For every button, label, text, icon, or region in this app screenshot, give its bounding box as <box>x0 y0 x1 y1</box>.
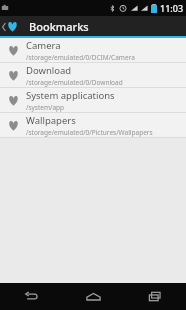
staticText: System applications <box>26 89 115 102</box>
staticText: /system/app <box>26 103 65 112</box>
staticText: /storage/emulated/0/Pictures/Wallpapers <box>26 128 153 137</box>
staticText: /storage/emulated/0/DCIM/Camera <box>26 53 135 62</box>
staticText: Wallpapers <box>26 114 76 127</box>
staticText: /storage/emulated/0/Download <box>26 78 123 87</box>
staticText: 11:03 <box>160 2 184 14</box>
button[interactable]: Download <box>0 63 186 87</box>
button[interactable]: System applications <box>0 88 186 112</box>
staticText: Download <box>26 64 72 77</box>
staticText: Bookmarks <box>29 19 89 34</box>
staticText: Camera <box>26 39 61 52</box>
button[interactable]: Home <box>62 283 124 310</box>
button[interactable]: Camera <box>0 38 186 62</box>
button[interactable]: Back <box>0 283 62 310</box>
button[interactable]: Wallpapers <box>0 113 186 137</box>
button[interactable]: Recent apps <box>124 283 186 310</box>
button[interactable]: Navigate up <box>0 16 20 36</box>
